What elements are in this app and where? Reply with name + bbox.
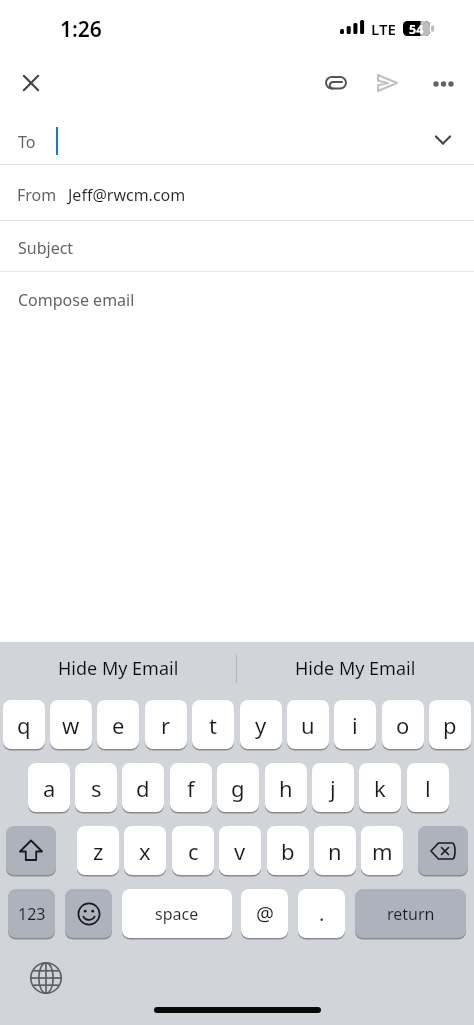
button[interactable]: q [3,700,45,749]
staticText: u [301,710,315,740]
button[interactable] [376,73,400,93]
staticText: o [396,710,410,740]
button[interactable]: t [192,700,234,749]
staticText: k [374,773,386,803]
staticText: q [17,710,31,740]
button[interactable]: From [0,165,474,220]
staticText: Hide My Email [58,656,179,681]
button[interactable]: space [122,889,232,938]
staticText: 54 [409,21,424,36]
button[interactable]: 123 [8,889,55,938]
staticText: Jeff@rwcm.com [68,184,186,206]
button[interactable]: m [361,826,403,875]
staticText: l [425,773,431,803]
button[interactable]: Hide My Email [0,642,236,695]
staticText: m [372,836,393,866]
button[interactable]: f [170,763,212,812]
button[interactable]: j [312,763,354,812]
staticText: b [281,836,295,866]
button[interactable]: e [97,700,139,749]
button[interactable] [433,81,454,87]
staticText: From [17,184,57,206]
button[interactable]: i [334,700,376,749]
button[interactable] [29,961,63,995]
button[interactable]: To [0,110,474,164]
button[interactable]: Subject [0,221,474,271]
staticText: LTE [371,19,396,39]
staticText: . [319,900,325,927]
button[interactable] [23,75,39,91]
button[interactable]: b [267,826,309,875]
button[interactable]: y [240,700,282,749]
staticText: w [62,710,80,740]
button[interactable]: Compose email [0,272,474,332]
button[interactable]: c [172,826,214,875]
staticText: @ [256,900,274,927]
button[interactable]: p [429,700,471,749]
staticText: z [93,836,104,866]
staticText: n [328,836,342,866]
button[interactable]: s [75,763,117,812]
staticText: 1:26 [60,15,102,44]
button[interactable]: return [355,889,466,938]
staticText: f [187,773,195,803]
button[interactable]: w [50,700,92,749]
staticText: return [387,903,435,925]
button[interactable]: r [145,700,187,749]
staticText: e [112,710,125,740]
button[interactable]: u [287,700,329,749]
button[interactable]: v [219,826,261,875]
staticText: space [155,903,199,925]
staticText: j [330,773,336,803]
button[interactable] [418,826,468,875]
button[interactable]: a [28,763,70,812]
staticText: Hide My Email [295,656,416,681]
staticText: d [136,773,150,803]
staticText: h [279,773,293,803]
staticText: a [43,773,56,803]
button[interactable]: n [314,826,356,875]
button[interactable]: z [77,826,119,875]
staticText: v [234,836,246,866]
button[interactable]: k [359,763,401,812]
button[interactable]: @ [241,889,288,938]
staticText: y [255,710,267,740]
button[interactable]: o [382,700,424,749]
button[interactable]: Hide My Email [237,642,474,695]
staticText: Compose email [18,289,135,311]
staticText: s [91,773,102,803]
staticText: r [161,710,171,740]
button[interactable]: l [407,763,449,812]
staticText: p [443,710,457,740]
button[interactable]: g [217,763,259,812]
staticText: Subject [18,237,74,259]
button[interactable] [65,889,112,938]
button[interactable] [6,826,56,875]
staticText: x [139,836,151,866]
staticText: 123 [18,903,46,925]
staticText: g [231,773,245,803]
button[interactable]: h [265,763,307,812]
staticText: c [188,836,199,866]
button[interactable]: . [298,889,345,938]
button[interactable]: d [122,763,164,812]
button[interactable]: x [124,826,166,875]
staticText: t [209,710,217,740]
staticText: i [352,710,358,740]
button[interactable] [325,76,348,90]
staticText: To [18,131,36,153]
